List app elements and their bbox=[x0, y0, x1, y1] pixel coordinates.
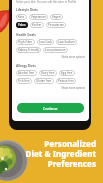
button[interactable]: Peanut free bbox=[56, 78, 76, 84]
staticText: Keto bbox=[18, 15, 25, 19]
staticText: Vegan bbox=[52, 15, 61, 19]
staticText: Dairy free bbox=[41, 71, 55, 75]
button[interactable]: Alcohol free bbox=[16, 70, 37, 76]
button[interactable]: Dairy free bbox=[39, 70, 57, 76]
staticText: Paleo bbox=[18, 23, 26, 27]
button[interactable]: Low-potassium bbox=[43, 47, 68, 53]
button[interactable]: Egg free bbox=[59, 70, 75, 76]
staticText: Pescatarian bbox=[48, 23, 64, 27]
button[interactable]: Kosher bbox=[30, 22, 44, 28]
button[interactable]: Vegan bbox=[50, 14, 63, 20]
button[interactable]: High-Fiber bbox=[16, 39, 35, 45]
staticText: Egg free bbox=[61, 71, 73, 75]
button[interactable]: Show more options bbox=[16, 55, 85, 59]
staticText: Fish free bbox=[18, 79, 30, 83]
button[interactable]: Keto bbox=[16, 14, 27, 20]
staticText: Vegetarian bbox=[31, 15, 46, 19]
button[interactable]: Gluten free bbox=[34, 78, 54, 84]
staticText: Select your diet. You can edit this late… bbox=[16, 0, 77, 4]
button[interactable]: Continue bbox=[17, 103, 84, 113]
staticText: Low-Carb bbox=[39, 40, 52, 44]
button[interactable]: Vegetarian bbox=[29, 14, 48, 20]
button[interactable]: Show more options bbox=[16, 86, 85, 90]
staticText: Health Goals bbox=[16, 33, 36, 37]
staticText: Alcohol free bbox=[18, 71, 35, 75]
staticText: Continue bbox=[43, 106, 58, 110]
staticText: Low-potassium bbox=[45, 48, 66, 52]
staticText: Allergy Diets bbox=[16, 64, 36, 68]
staticText: Lifestyle Diets bbox=[16, 8, 38, 12]
staticText: Kosher bbox=[32, 23, 42, 27]
staticText: Low-Sodium bbox=[58, 40, 75, 44]
staticText: Personalized Diet & Ingredient Preferenc… bbox=[25, 138, 96, 169]
button[interactable]: Low-Carb bbox=[37, 39, 54, 45]
staticText: Gluten free bbox=[36, 79, 52, 83]
button[interactable]: Low-Sodium bbox=[56, 39, 77, 45]
staticText: Kidney-Friendly bbox=[18, 48, 39, 52]
button[interactable]: Paleo bbox=[16, 22, 28, 28]
staticText: Peanut free bbox=[58, 79, 74, 83]
button[interactable]: Kidney-Friendly bbox=[16, 47, 41, 53]
button[interactable]: Fish free bbox=[16, 78, 32, 84]
button[interactable]: Pescatarian bbox=[46, 22, 66, 28]
staticText: High-Fiber bbox=[18, 40, 33, 44]
